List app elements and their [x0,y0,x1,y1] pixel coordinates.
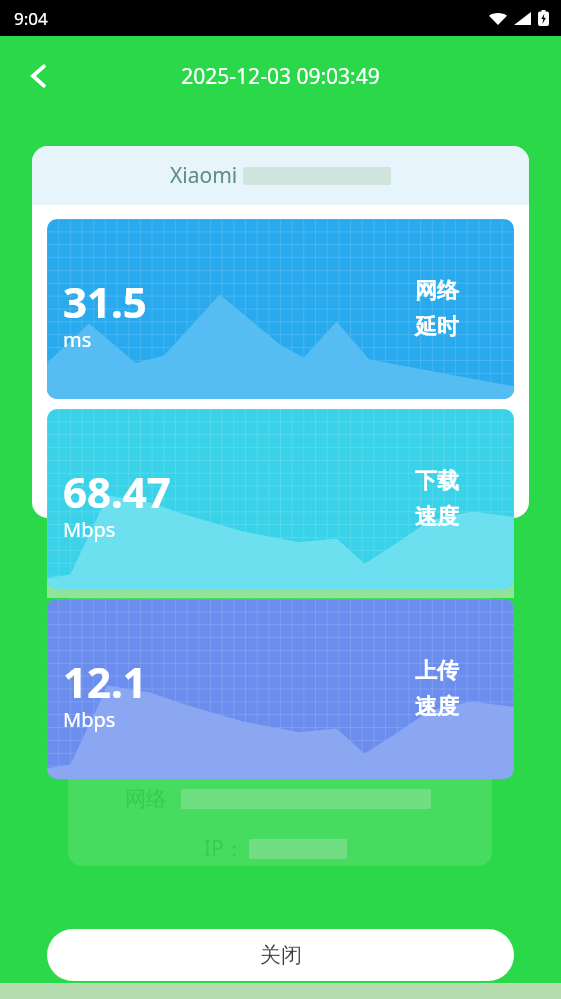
staticText: 速度 [415,693,459,721]
staticText: 网络 [125,786,167,812]
staticText: 9:04 [14,7,48,30]
staticText: 速度 [415,503,459,531]
staticText: Xiaomi [170,161,243,190]
staticText: Mbps [63,516,116,543]
staticText: 68.47 [63,463,171,520]
button[interactable]: Back [16,53,62,99]
staticText: Mbps [63,706,116,733]
staticText: 上传 [415,657,459,685]
staticText: 网络 [415,277,459,305]
staticText: IP： [204,834,245,863]
staticText: 延时 [415,313,459,341]
button[interactable]: 68.47 [47,409,514,589]
staticText: 2025-12-03 09:03:49 [181,62,380,91]
button[interactable]: 31.5 [47,219,514,399]
staticText: 下载 [415,467,459,495]
staticText: ms [63,326,92,353]
button[interactable]: 关闭 [47,929,514,981]
button[interactable]: 12.1 [47,599,514,779]
staticText: 关闭 [260,942,302,968]
staticText: 31.5 [63,273,147,330]
staticText: 12.1 [63,653,147,710]
